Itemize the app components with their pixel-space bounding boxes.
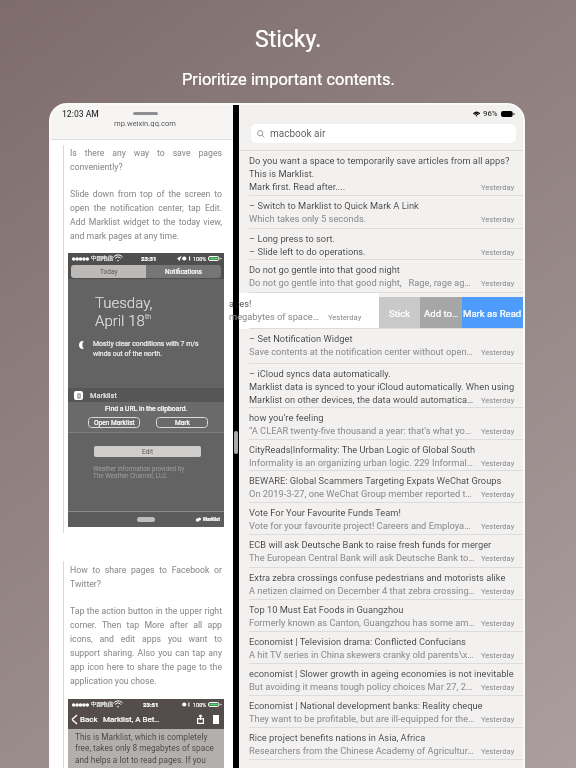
staticText: Mark first. Read after.... xyxy=(249,179,475,192)
staticText: Economist | National development banks: … xyxy=(249,698,483,711)
staticText: Yesterday xyxy=(328,313,362,322)
staticText: how you’re feeling xyxy=(249,410,324,423)
staticText: Top 10 Must Eat Foods in Guangzhou xyxy=(249,602,404,615)
button[interactable]: Open Marklist xyxy=(88,417,140,428)
staticText: Do not go gentle into that good night, R… xyxy=(249,275,475,288)
button[interactable]: – Switch to Marklist to Quick Mark A Lin… xyxy=(239,196,523,229)
button[interactable]: Top 10 Must Eat Foods in Guangzhou xyxy=(239,600,523,632)
staticText: How to share pages to Facebook or Twitte… xyxy=(70,562,222,590)
staticText: Yesterday xyxy=(481,522,515,531)
button[interactable]: how you’re feeling xyxy=(239,408,523,440)
staticText: macbook air xyxy=(270,128,326,140)
button[interactable]: Mark xyxy=(156,417,208,428)
button[interactable]: Extra zebra crossings confuse pedestrian… xyxy=(239,568,523,600)
staticText: CityReads|Informality: The Urban Logic o… xyxy=(249,442,476,455)
staticText: Notifications xyxy=(165,268,202,276)
staticText: Tap the action button in the upper right… xyxy=(70,603,222,687)
staticText: This is Marklist, which is completely fr… xyxy=(75,732,219,765)
other: Back xyxy=(72,715,77,724)
staticText: – Slide left to do operations. xyxy=(249,244,475,257)
staticText: On 2019-3-27, one WeChat Group member re… xyxy=(249,486,475,499)
staticText: Is there any way to save pages convenien… xyxy=(70,145,222,173)
button[interactable]: – iCloud syncs data automatically. xyxy=(239,364,523,408)
button[interactable]: Mark as Read xyxy=(462,297,523,329)
staticText: economist | Slower growth in ageing econ… xyxy=(249,666,514,679)
button[interactable]: – Long press to sort. xyxy=(239,229,523,260)
staticText: Tuesday, xyxy=(95,294,153,312)
staticText: 12:03 AM xyxy=(62,109,99,119)
staticText: Save contents at the notification center… xyxy=(249,344,475,357)
staticText: Yesterday xyxy=(481,747,515,756)
staticText: 100% xyxy=(193,256,207,262)
button[interactable]: – Set Notification Widget xyxy=(239,329,523,364)
staticText: 100% xyxy=(193,702,207,708)
other: Share xyxy=(197,715,204,724)
button[interactable]: Marklist xyxy=(74,388,224,402)
staticText: Yesterday xyxy=(481,554,515,563)
staticText: ECB will ask Deutsche Bank to raise fres… xyxy=(249,537,492,550)
staticText: Yesterday xyxy=(481,427,515,436)
staticText: April 18 xyxy=(95,312,145,330)
staticText: Weather information provided by xyxy=(93,465,185,472)
staticText: Prioritize important contents. xyxy=(182,70,395,89)
staticText: Mostly clear conditions with 7 m/s winds… xyxy=(93,340,210,357)
staticText: – Long press to sort. xyxy=(249,231,336,244)
staticText: th xyxy=(145,313,152,321)
staticText: – Switch to Marklist to Quick Mark A Lin… xyxy=(249,198,419,211)
button[interactable]: Do not go gentle into that good night xyxy=(239,260,523,293)
staticText: BEWARE: Global Scammers Targeting Expats… xyxy=(249,473,502,486)
staticText: Do not go gentle into that good night xyxy=(249,262,400,275)
button[interactable]: Economist | Television drama: Conflicted… xyxy=(239,632,523,664)
staticText: The European Central Bank will ask Deuts… xyxy=(249,550,475,563)
staticText: Yesterday xyxy=(481,587,515,596)
staticText: Vote For Your Favourite Funds Team! xyxy=(249,505,401,518)
staticText: They want to be profitable, but are ill-… xyxy=(249,711,475,724)
staticText: Sticky. xyxy=(255,26,322,53)
staticText: Yesterday xyxy=(481,619,515,628)
staticText: 23:51 xyxy=(143,701,159,708)
button[interactable]: Vote For Your Favourite Funds Team! xyxy=(239,503,523,535)
button[interactable]: BEWARE: Global Scammers Targeting Expats… xyxy=(239,471,523,503)
staticText: Slide down from top of the screen to ope… xyxy=(70,186,222,242)
staticText: Yesterday xyxy=(481,215,515,224)
staticText: Marklist xyxy=(203,517,220,522)
staticText: Stick xyxy=(389,308,411,319)
staticText: megabytes of space… xyxy=(229,309,319,322)
button[interactable]: Stick xyxy=(379,297,420,329)
staticText: Which takes only 5 seconds. xyxy=(249,211,475,224)
button[interactable]: CityReads|Informality: The Urban Logic o… xyxy=(239,440,523,471)
button[interactable]: Rice project benefits nations in Asia, A… xyxy=(239,728,523,760)
staticText: Back xyxy=(80,715,98,724)
staticText: Yesterday xyxy=(481,683,515,692)
button[interactable]: Do you want a space to temporarily save … xyxy=(239,151,523,196)
staticText: Edit xyxy=(142,448,154,456)
button[interactable]: macbook air xyxy=(257,124,510,143)
staticText: Economist | Television drama: Conflicted… xyxy=(249,634,466,647)
staticText: Extra zebra crossings confuse pedestrian… xyxy=(249,570,506,583)
staticText: Vote for your favourite project! Careers… xyxy=(249,518,475,531)
staticText: Marklist xyxy=(90,391,117,400)
button[interactable]: Add to… xyxy=(420,297,462,329)
staticText: ages! xyxy=(229,296,252,309)
button[interactable]: Today xyxy=(71,265,146,278)
button[interactable]: Edit xyxy=(94,446,201,457)
button[interactable]: economist | Slower growth in ageing econ… xyxy=(239,664,523,696)
button[interactable]: Notifications xyxy=(146,265,221,278)
staticText: Marklist on other devices, the data woul… xyxy=(249,392,475,405)
staticText: Rice project benefits nations in Asia, A… xyxy=(249,730,426,743)
button[interactable]: ECB will ask Deutsche Bank to raise fres… xyxy=(239,535,523,568)
staticText: Add to… xyxy=(424,308,459,319)
staticText: Yesterday xyxy=(481,715,515,724)
staticText: This is Marklist. xyxy=(249,166,315,179)
staticText: Formerly known as Canton, Guangzhou has … xyxy=(249,615,475,628)
staticText: Today xyxy=(100,268,118,276)
staticText: Marklist data is synced to your iCloud a… xyxy=(249,379,515,392)
staticText: Yesterday xyxy=(481,490,515,499)
button[interactable]: ages! xyxy=(239,293,379,329)
staticText: Informality is an organizing urban logic… xyxy=(249,455,475,468)
button[interactable]: Economist | National development banks: … xyxy=(239,696,523,728)
staticText: But avoiding it means tough policy choic… xyxy=(249,679,475,692)
staticText: – iCloud syncs data automatically. xyxy=(249,366,391,379)
staticText: Do you want a space to temporarily save … xyxy=(249,153,510,166)
